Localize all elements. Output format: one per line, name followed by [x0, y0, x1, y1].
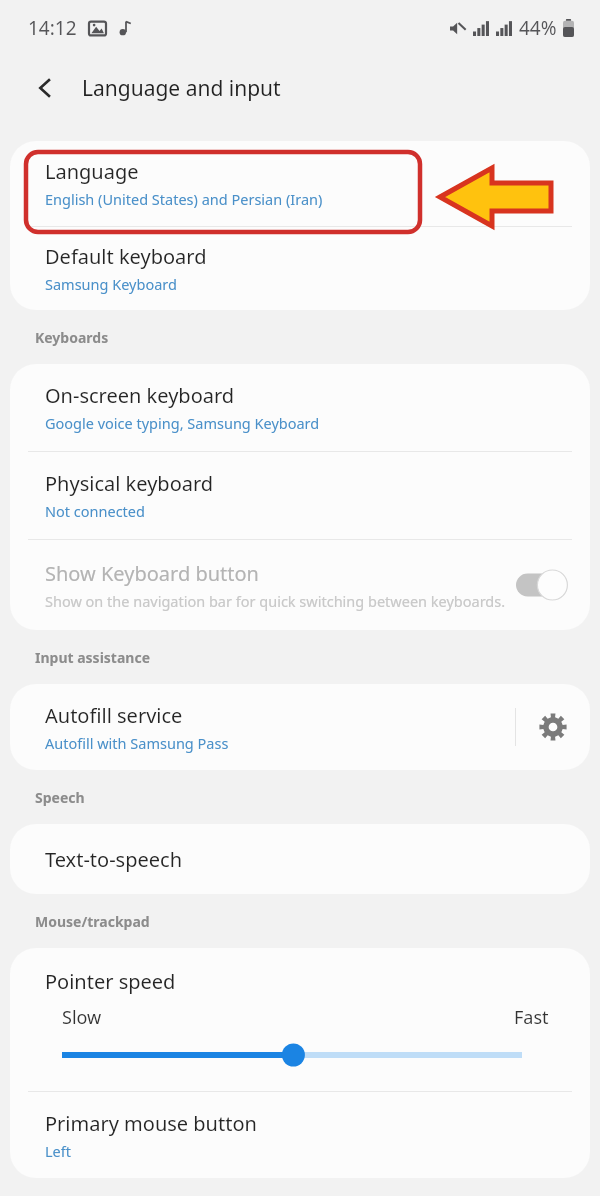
button[interactable]: Autofill service — [10, 684, 515, 770]
staticText: Fast — [514, 1005, 549, 1030]
staticText: Input assistance — [35, 648, 151, 667]
staticText: 44% — [519, 15, 557, 41]
staticText: Slow — [62, 1005, 102, 1030]
button[interactable]: Language — [10, 141, 590, 226]
staticText: Left — [45, 1141, 71, 1161]
staticText: English (United States) and Persian (Ira… — [45, 189, 323, 209]
button[interactable]: Primary mouse button — [10, 1092, 590, 1178]
button[interactable]: Pointer speed — [10, 948, 590, 1091]
staticText: Show on the navigation bar for quick swi… — [45, 591, 506, 611]
staticText: Language and input — [82, 74, 281, 103]
button[interactable]: Back — [22, 64, 70, 112]
staticText: Autofill service — [45, 702, 183, 729]
staticText: Physical keyboard — [45, 470, 214, 497]
staticText: Mouse/trackpad — [35, 912, 150, 931]
button[interactable]: Default keyboard — [10, 227, 590, 310]
button[interactable]: Text-to-speech — [10, 824, 590, 894]
staticText: Primary mouse button — [45, 1110, 257, 1137]
staticText: Samsung Keyboard — [45, 274, 177, 294]
staticText: On-screen keyboard — [45, 382, 235, 409]
staticText: Not connected — [45, 501, 145, 521]
staticText: Language — [45, 158, 139, 185]
staticText: Speech — [35, 788, 85, 807]
staticText: Text-to-speech — [45, 846, 182, 873]
staticText: Pointer speed — [45, 968, 176, 995]
staticText: Default keyboard — [45, 243, 207, 270]
button[interactable]: Autofill settings — [516, 684, 590, 770]
staticText: Keyboards — [35, 328, 109, 347]
staticText: Autofill with Samsung Pass — [45, 733, 229, 753]
staticText: Show Keyboard button — [45, 560, 259, 587]
staticText: Google voice typing, Samsung Keyboard — [45, 413, 320, 433]
button[interactable]: On-screen keyboard — [10, 364, 590, 451]
staticText: 14:12 — [28, 15, 77, 41]
button[interactable]: Physical keyboard — [10, 452, 590, 539]
button[interactable]: Show Keyboard button — [10, 540, 590, 630]
